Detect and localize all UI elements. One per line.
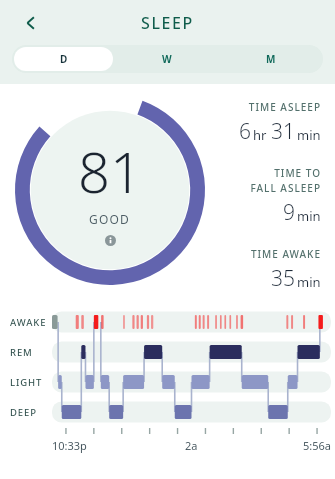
staticText: 10:33p — [52, 438, 87, 453]
staticText: TIME AWAKE — [250, 247, 321, 261]
staticText: SLEEP — [141, 12, 194, 34]
staticText: D — [60, 52, 68, 66]
staticText: min — [297, 207, 321, 225]
button[interactable]: M — [221, 47, 321, 71]
staticText: W — [162, 52, 173, 66]
button[interactable]: W — [117, 47, 217, 71]
staticText: 5:56a — [303, 438, 331, 453]
staticText: AWAKE — [10, 316, 47, 329]
staticText: 2a — [185, 438, 198, 453]
staticText: FALL ASLEEP — [250, 181, 321, 195]
staticText: min — [297, 126, 321, 144]
staticText: REM — [10, 346, 33, 359]
button[interactable]: Back — [14, 6, 48, 40]
staticText: min — [297, 273, 321, 291]
staticText: M — [266, 52, 276, 66]
staticText: TIME ASLEEP — [248, 100, 321, 114]
staticText: LIGHT — [10, 376, 43, 389]
staticText: 31 — [271, 117, 295, 146]
staticText: DEEP — [10, 406, 37, 419]
button[interactable]: D — [14, 47, 113, 71]
staticText: TIME TO — [274, 166, 321, 180]
staticText: 6 — [239, 117, 251, 146]
staticText: 81 — [78, 133, 142, 209]
staticText: 35 — [271, 264, 295, 293]
staticText: hr — [253, 126, 267, 144]
staticText: 9 — [283, 198, 295, 227]
button[interactable]: Info about sleep score — [103, 233, 117, 247]
staticText: GOOD — [89, 211, 131, 227]
